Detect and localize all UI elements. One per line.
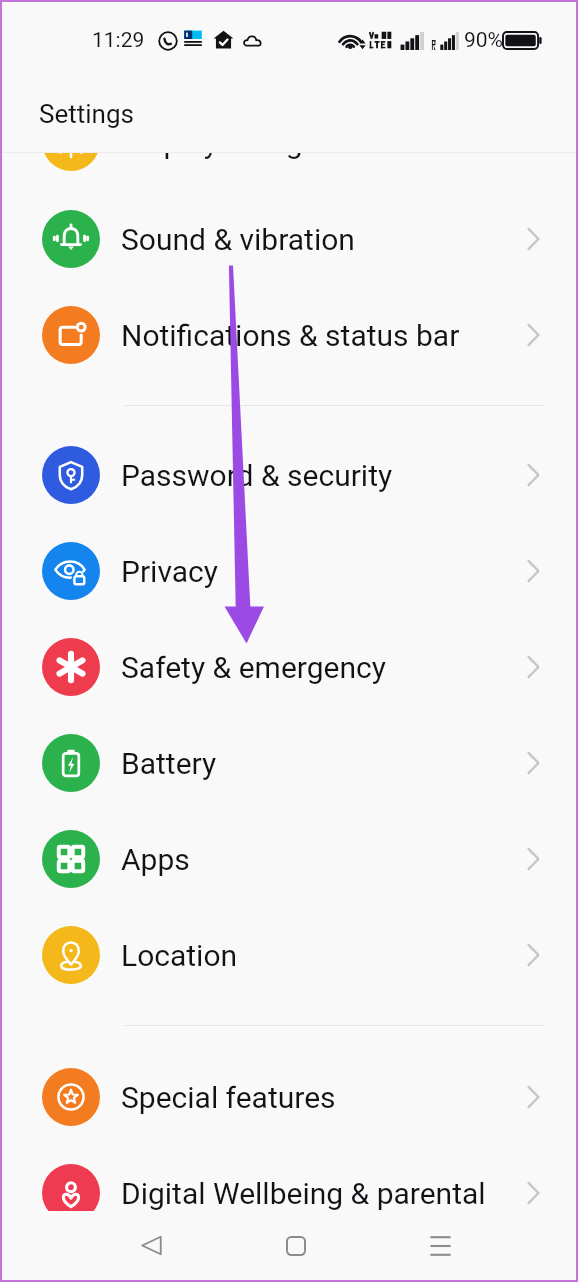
button[interactable]: Digital Wellbeing & parental	[2, 1145, 576, 1241]
button[interactable]: Sound & vibration	[2, 191, 576, 287]
staticText: Display & brightness	[121, 153, 393, 160]
button[interactable]: Password & security	[2, 427, 576, 523]
staticText: Apps	[121, 842, 190, 877]
staticText: Safety & emergency	[121, 650, 386, 685]
button[interactable]: Notifications & status bar	[2, 287, 576, 383]
staticText: Privacy	[121, 554, 218, 589]
button[interactable]: Home	[248, 1211, 344, 1280]
button[interactable]: Special features	[2, 1049, 576, 1145]
button[interactable]: Battery	[2, 715, 576, 811]
staticText: Password & security	[121, 458, 393, 493]
button[interactable]: Privacy	[2, 523, 576, 619]
staticText: Battery	[121, 746, 217, 781]
staticText: Settings	[39, 99, 134, 129]
staticText: Sound & vibration	[121, 222, 355, 257]
button[interactable]: Apps	[2, 811, 576, 907]
staticText: Special features	[121, 1080, 336, 1115]
button[interactable]: Back	[103, 1211, 199, 1280]
staticText: Location	[121, 938, 238, 973]
staticText: 90%	[464, 28, 503, 53]
button[interactable]: Location	[2, 907, 576, 1003]
button[interactable]: Safety & emergency	[2, 619, 576, 715]
staticText: 11:29	[92, 28, 145, 53]
button[interactable]: Recent apps	[392, 1211, 488, 1280]
button[interactable]: Display & brightness	[2, 153, 576, 190]
staticText: Notifications & status bar	[121, 318, 460, 353]
staticText: Digital Wellbeing & parental	[121, 1176, 486, 1211]
